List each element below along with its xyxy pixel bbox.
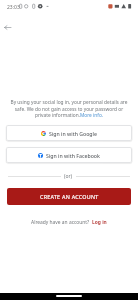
button[interactable]: Sign in with Facebook	[6, 147, 132, 163]
button[interactable]: Log in	[92, 219, 107, 226]
staticText: By using your social log in, your person…	[7, 99, 131, 119]
staticText: 23:03	[7, 4, 20, 11]
staticText: Sign in with Google	[49, 130, 97, 137]
button[interactable]: Back	[0, 20, 14, 34]
staticText: CREATE AN ACCOUNT	[40, 193, 99, 200]
staticText: Already have an account?	[31, 219, 90, 226]
staticText: Sign in with Facebook	[46, 152, 100, 159]
staticText: (or)	[64, 173, 73, 180]
button[interactable]: CREATE AN ACCOUNT	[7, 188, 131, 205]
button[interactable]: Sign in with Google	[6, 125, 132, 141]
staticText: Log in	[92, 219, 107, 226]
